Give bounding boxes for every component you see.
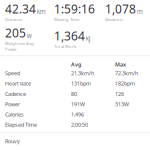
staticText: 191W <box>71 100 85 108</box>
staticText: 2:00:50 <box>71 121 88 128</box>
staticText: Cadence <box>5 90 26 97</box>
staticText: 72.3km/h <box>115 70 138 77</box>
staticText: Power <box>5 100 20 108</box>
staticText: Speed <box>5 70 20 77</box>
staticText: Heart Rate <box>5 80 31 87</box>
staticText: kJ <box>86 34 91 43</box>
staticText: Avg <box>71 61 81 68</box>
staticText: 1,364 <box>54 28 85 44</box>
staticText: Elevation <box>105 16 123 22</box>
staticText: 42.34 <box>5 1 36 17</box>
staticText: 126 <box>115 90 124 97</box>
staticText: Elapsed Time <box>5 121 37 128</box>
staticText: 205 <box>5 25 26 41</box>
staticText: 1,496 <box>71 111 84 118</box>
staticText: m <box>137 7 143 16</box>
staticText: Total Work <box>54 43 76 49</box>
staticText: 1:59:16 <box>54 1 95 17</box>
staticText: Max <box>115 61 126 68</box>
staticText: Distance <box>5 16 22 22</box>
staticText: 182bpm <box>115 80 135 87</box>
staticText: 21.3km/h <box>71 70 94 77</box>
staticText: w <box>27 31 32 40</box>
staticText: Weighted Avg Power <box>5 40 34 52</box>
staticText: Calories <box>5 111 24 118</box>
staticText: Moving Time <box>54 16 79 22</box>
staticText: Rouvy <box>5 137 20 145</box>
staticText: 80 <box>71 90 77 97</box>
staticText: 1,078 <box>105 1 136 17</box>
staticText: 131bpm <box>71 80 91 87</box>
staticText: 313W <box>115 100 129 108</box>
staticText: km <box>37 7 46 16</box>
